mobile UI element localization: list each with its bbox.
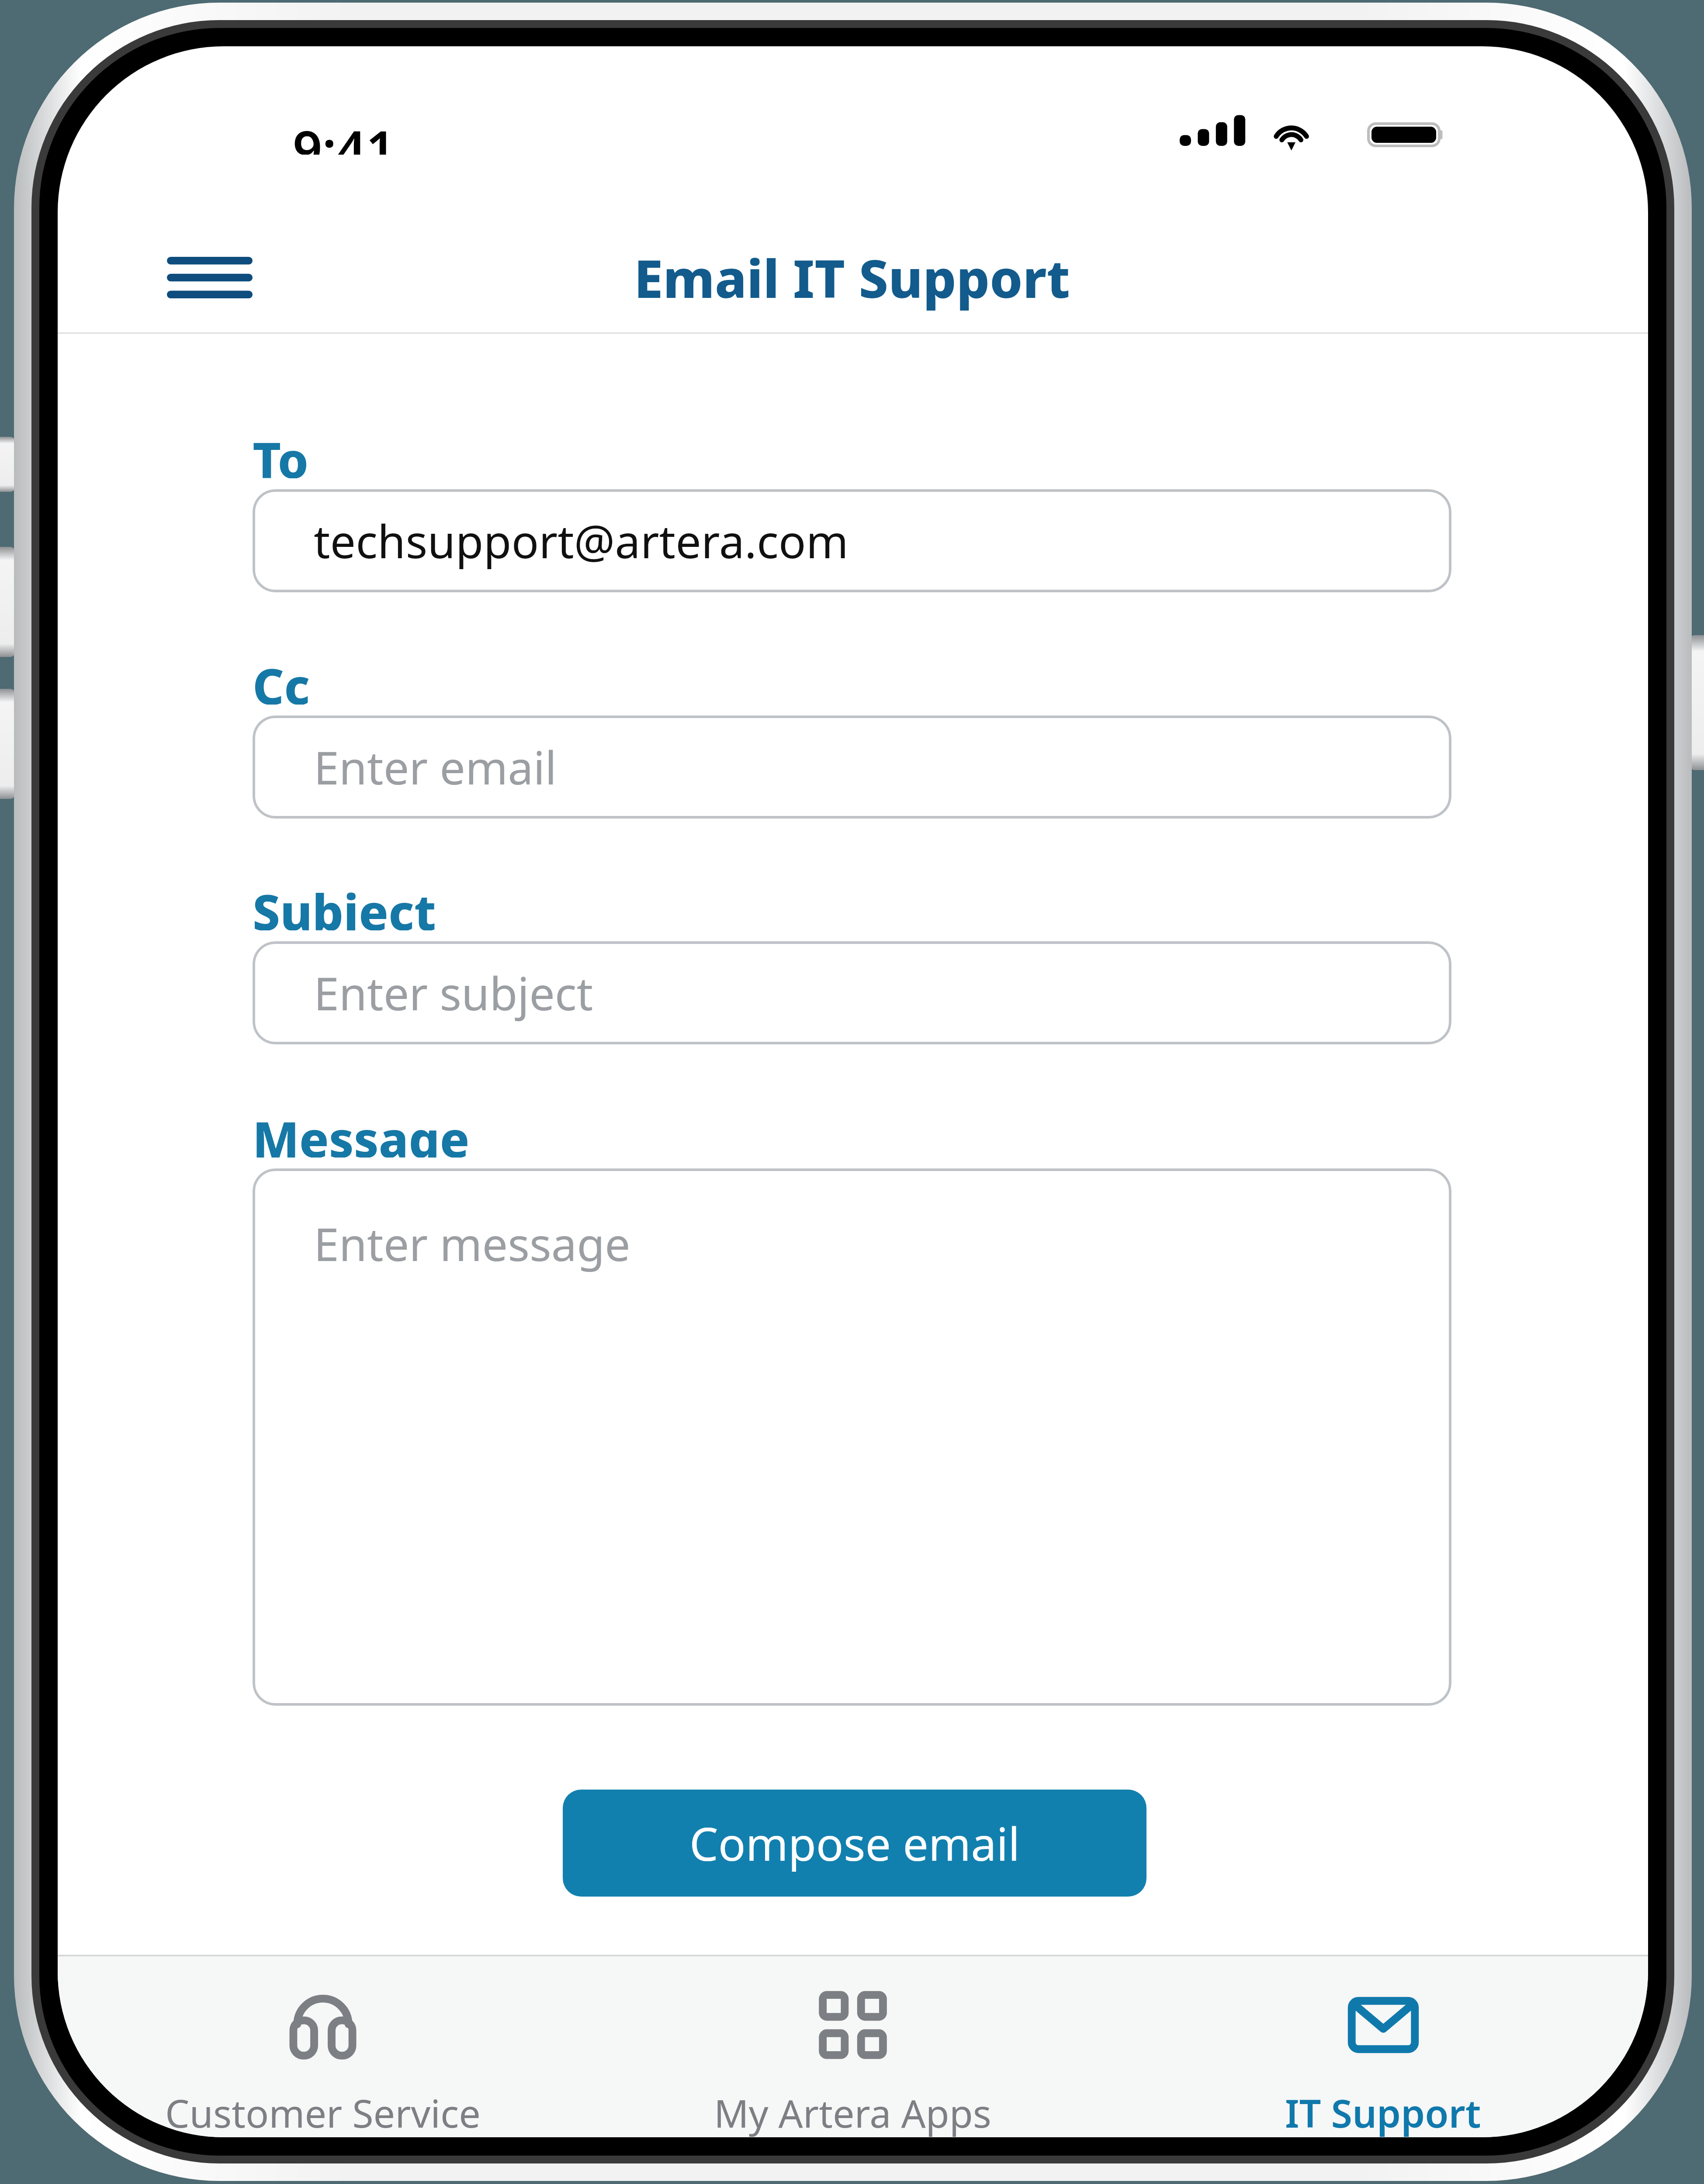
staticText: 9:41 <box>293 113 396 155</box>
button[interactable]: Enter message <box>253 1168 1451 1706</box>
button[interactable]: IT Support <box>1118 1961 1648 2137</box>
staticText: Cc <box>253 652 310 705</box>
button[interactable]: Customer Service <box>58 1961 588 2137</box>
staticText: Message <box>253 1105 470 1158</box>
staticText: techsupport@artera.com <box>314 510 849 572</box>
staticText: To <box>253 426 309 478</box>
button[interactable]: Enter email <box>253 715 1451 819</box>
staticText: Compose email <box>689 1812 1020 1874</box>
staticText: My Artera Apps <box>714 2087 992 2137</box>
button[interactable]: Open navigation menu <box>144 236 275 319</box>
staticText: Subject <box>253 878 436 930</box>
staticText: Enter message <box>314 1213 630 1275</box>
staticText: IT Support <box>1285 2087 1481 2137</box>
staticText: Customer Service <box>165 2087 481 2137</box>
button[interactable]: techsupport@artera.com <box>253 489 1451 592</box>
staticText: Enter email <box>314 736 557 798</box>
button[interactable]: My Artera Apps <box>588 1961 1118 2137</box>
button[interactable]: Compose email <box>563 1790 1146 1897</box>
staticText: Enter subject <box>314 962 593 1024</box>
staticText: Email IT Support <box>634 242 1070 313</box>
button[interactable]: Enter subject <box>253 941 1451 1044</box>
